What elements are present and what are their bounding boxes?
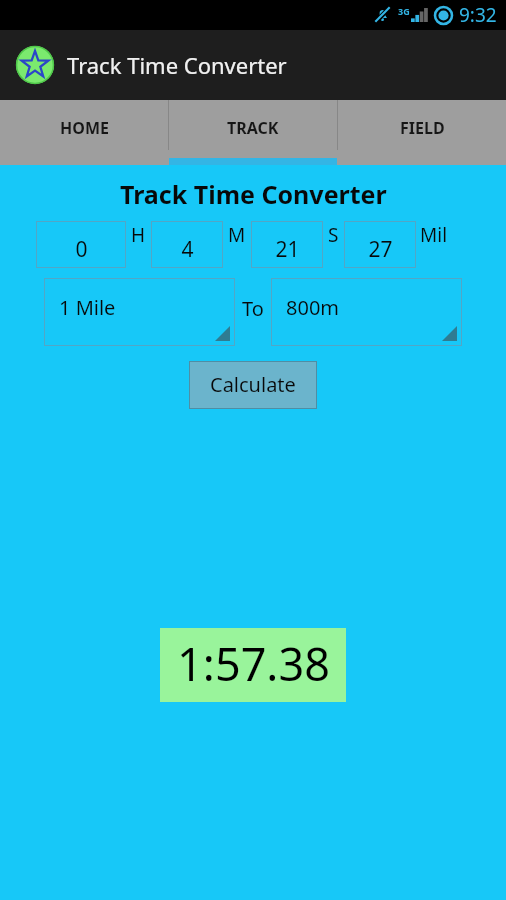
button[interactable]: 1 Mile	[44, 278, 235, 346]
staticText: M	[228, 222, 246, 248]
button[interactable]: 800m	[271, 278, 462, 346]
staticText: 9:32	[459, 2, 497, 28]
staticText: 4	[181, 235, 194, 264]
staticText: Mil	[420, 222, 448, 248]
button[interactable]: TRACK	[169, 100, 337, 165]
button[interactable]: FIELD	[338, 100, 506, 165]
staticText: 800m	[286, 294, 340, 321]
other: App icon	[16, 46, 54, 84]
button[interactable]: HOME	[0, 100, 168, 165]
staticText: 0	[75, 235, 88, 264]
button[interactable]: 0	[36, 221, 126, 268]
button[interactable]: Calculate	[189, 361, 317, 409]
staticText: H	[131, 222, 146, 248]
staticText: 27	[368, 235, 393, 264]
staticText: TRACK	[227, 117, 279, 139]
staticText: 21	[275, 235, 300, 264]
staticText: S	[328, 222, 339, 248]
staticText: Track Time Converter	[67, 50, 287, 80]
staticText: FIELD	[400, 117, 445, 139]
staticText: Calculate	[210, 371, 296, 398]
staticText: 1 Mile	[59, 294, 116, 321]
staticText: Track Time Converter	[120, 177, 387, 211]
staticText: 3G	[398, 5, 410, 17]
button[interactable]: 27	[344, 221, 416, 268]
staticText: HOME	[60, 117, 109, 139]
staticText: 1:57.38	[177, 633, 330, 694]
button[interactable]: 4	[151, 221, 223, 268]
button[interactable]: 21	[251, 221, 323, 268]
staticText: To	[242, 295, 264, 322]
